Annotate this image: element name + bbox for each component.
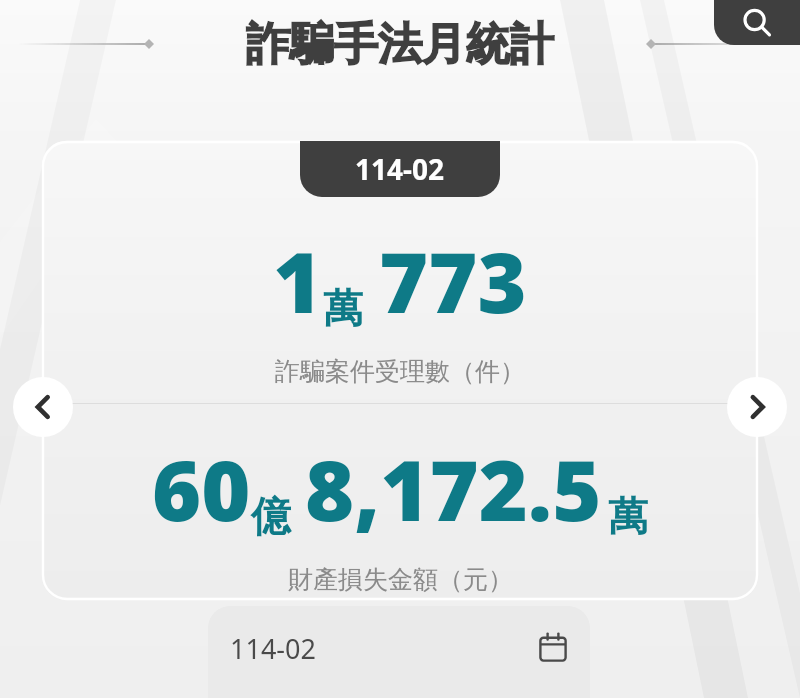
staticText: 萬	[323, 283, 363, 333]
button[interactable]: 114-02	[300, 141, 500, 197]
button[interactable]: 114-02	[208, 606, 590, 698]
staticText: 8,172.5	[305, 431, 602, 545]
staticText: 60	[152, 431, 251, 545]
staticText: 億	[251, 491, 291, 541]
staticText: 詐騙案件受理數（件）	[275, 356, 525, 387]
staticText: 財產損失金額（元）	[288, 564, 513, 595]
button[interactable]: Next month	[727, 377, 787, 437]
other: Pick date	[538, 633, 568, 663]
staticText: 萬	[608, 491, 648, 541]
staticText: 114-02	[230, 630, 316, 667]
staticText: 114-02	[355, 150, 445, 188]
button[interactable]: Search	[714, 0, 800, 45]
staticText: 1	[273, 223, 323, 337]
button[interactable]: Previous month	[13, 377, 73, 437]
staticText: 773	[379, 223, 527, 337]
staticText: 詐騙手法月統計	[246, 17, 554, 72]
